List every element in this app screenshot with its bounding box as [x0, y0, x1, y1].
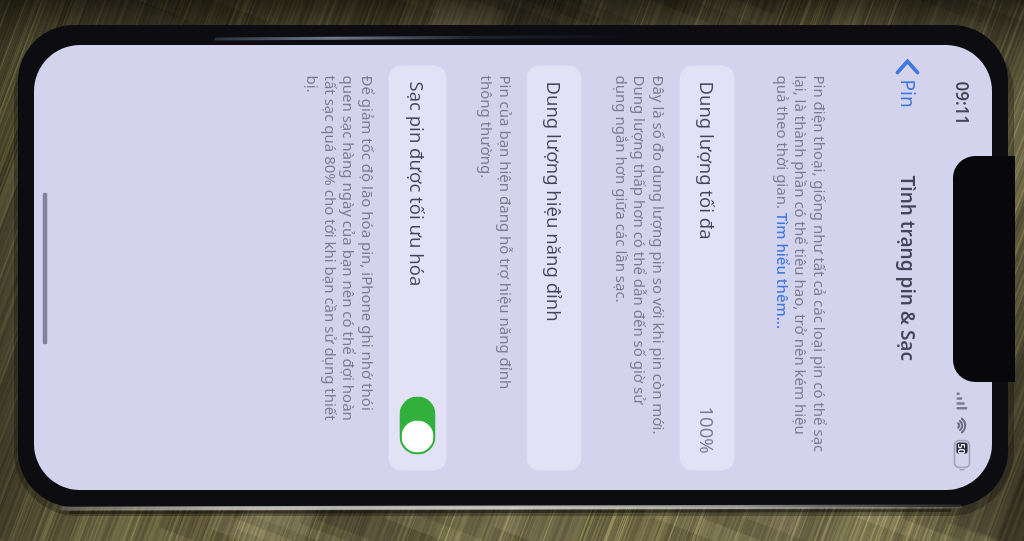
staticText: Sạc pin được tối ưu hóa: [404, 81, 429, 286]
staticText: Để giảm tốc độ lão hóa pin, iPhone ghi n…: [302, 75, 377, 421]
button[interactable]: Sạc pin được tối ưu hóa: [399, 396, 435, 454]
staticText: Đây là số đo dung lượng pin so với khi p…: [611, 75, 668, 434]
staticText: 50: [955, 443, 967, 454]
button[interactable]: Sạc pin được tối ưu hóa: [388, 65, 446, 470]
staticText: Pin: [894, 79, 920, 108]
staticText: 09:11: [950, 81, 973, 125]
staticText: Dung lượng tối đa: [694, 81, 719, 240]
button[interactable]: Dung lượng tối đa: [679, 65, 734, 470]
staticText: Pin của bạn hiện đang hỗ trợ hiệu năng đ…: [476, 75, 515, 389]
staticText: Dung lượng hiệu năng đỉnh: [541, 81, 566, 322]
button[interactable]: Dung lượng hiệu năng đỉnh: [526, 65, 581, 470]
staticText: Tình trạng pin & Sạc: [894, 175, 920, 361]
button[interactable]: Pin: [889, 55, 925, 112]
staticText: Pin điện thoại, giống như tất cả các loạ…: [772, 75, 829, 452]
staticText: 100%: [694, 406, 719, 454]
